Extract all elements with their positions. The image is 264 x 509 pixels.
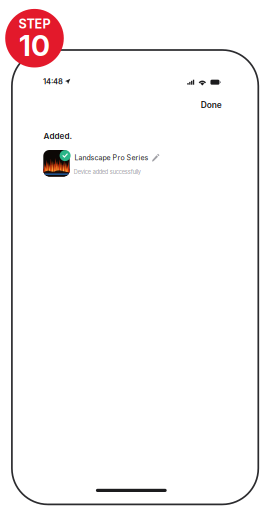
staticText: Landscape Pro Series — [74, 153, 148, 162]
staticText: Device added successfully — [74, 168, 141, 175]
button[interactable]: Rename device — [151, 153, 160, 162]
button[interactable]: Done — [182, 95, 222, 115]
staticText: 10 — [19, 28, 50, 63]
button[interactable]: Landscape Pro Series — [43, 148, 248, 178]
staticText: STEP — [18, 16, 50, 31]
staticText: 14:48 — [43, 77, 63, 86]
staticText: Added. — [43, 131, 72, 141]
staticText: Done — [201, 100, 222, 110]
